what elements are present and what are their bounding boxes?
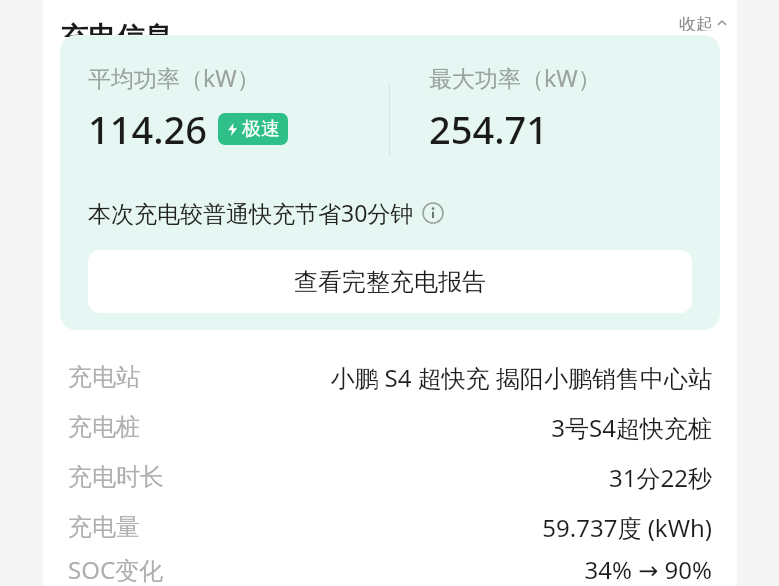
button[interactable]: 查看完整充电报告 bbox=[88, 250, 692, 313]
staticText: 34% → 90% bbox=[584, 553, 712, 586]
button[interactable]: SOC变化 bbox=[43, 552, 737, 586]
staticText: 极速 bbox=[242, 117, 280, 141]
staticText: 254.71 bbox=[429, 103, 549, 155]
other: 说明 bbox=[422, 202, 444, 224]
staticText: 平均功率（kW） bbox=[88, 62, 260, 93]
staticText: 充电时长 bbox=[68, 462, 164, 492]
button[interactable]: 充电桩 bbox=[43, 402, 737, 452]
staticText: 收起 bbox=[679, 14, 713, 31]
staticText: 最大功率（kW） bbox=[429, 62, 601, 93]
staticText: 查看完整充电报告 bbox=[294, 267, 486, 297]
button[interactable]: 充电时长 bbox=[43, 452, 737, 502]
staticText: 31分22秒 bbox=[609, 461, 712, 494]
button[interactable]: 充电量 bbox=[43, 502, 737, 552]
staticText: 充电信息 bbox=[60, 20, 172, 37]
staticText: 充电桩 bbox=[68, 412, 140, 442]
staticText: SOC变化 bbox=[68, 553, 164, 586]
button[interactable]: 本次充电较普通快充节省30分钟 bbox=[88, 197, 444, 228]
staticText: 3号S4超快充桩 bbox=[551, 411, 712, 444]
staticText: 小鹏 S4 超快充 揭阳小鹏销售中心站 bbox=[330, 361, 712, 394]
staticText: 59.737度 (kWh) bbox=[542, 511, 712, 544]
button[interactable]: 充电站 bbox=[43, 352, 737, 402]
staticText: 114.26 bbox=[88, 103, 208, 155]
button[interactable]: 收起 bbox=[679, 14, 727, 31]
staticText: 充电站 bbox=[68, 362, 140, 392]
staticText: 充电量 bbox=[68, 512, 140, 542]
staticText: 本次充电较普通快充节省30分钟 bbox=[88, 197, 414, 228]
